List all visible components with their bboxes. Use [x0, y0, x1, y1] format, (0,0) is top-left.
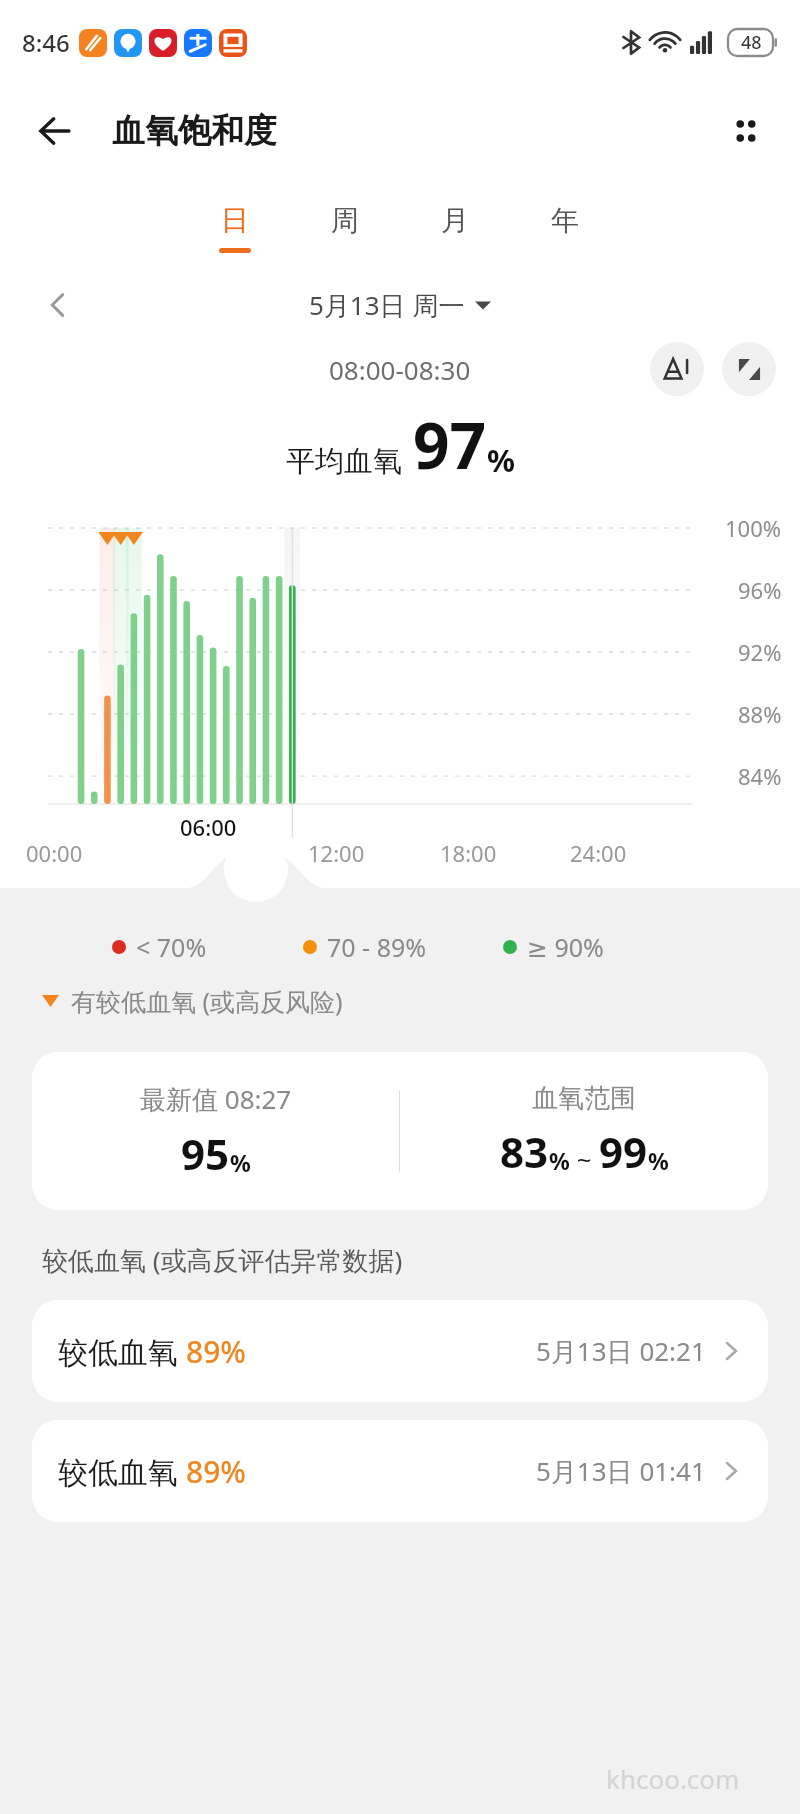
staticText: 5月13日 02:21: [536, 1333, 706, 1369]
button[interactable]: 5月13日 周一: [309, 287, 491, 323]
staticText: %: [648, 1145, 669, 1176]
staticText: 24:00: [570, 838, 627, 868]
staticText: 血氧饱和度: [112, 110, 277, 152]
staticText: 06:00: [180, 812, 237, 842]
staticText: 100%: [725, 513, 782, 543]
staticText: 5月13日 周一: [309, 287, 465, 323]
staticText: 92%: [738, 637, 782, 667]
staticText: 最新值 08:27: [140, 1081, 292, 1117]
staticText: 84%: [738, 761, 782, 791]
button[interactable]: 年: [537, 201, 593, 255]
staticText: 有较低血氧 (或高反风险): [71, 984, 343, 1018]
staticText: 00:00: [26, 838, 83, 868]
staticText: ≥ 90%: [527, 930, 604, 964]
staticText: 较低血氧 (或高反评估异常数据): [42, 1242, 403, 1278]
button[interactable]: 前一天: [34, 281, 82, 329]
button[interactable]: 测量血氧: [650, 342, 704, 396]
staticText: 89%: [186, 1331, 246, 1372]
staticText: 88%: [738, 699, 782, 729]
staticText: < 70%: [136, 930, 207, 964]
button[interactable]: 更多选项: [718, 103, 774, 159]
staticText: 83: [500, 1123, 549, 1180]
button[interactable]: 最新值 08:27: [32, 1052, 768, 1210]
button[interactable]: 月: [427, 201, 483, 255]
staticText: 年: [551, 203, 579, 238]
staticText: 较低血氧: [58, 1451, 186, 1492]
staticText: 70 - 89%: [327, 930, 427, 964]
staticText: 血氧范围: [532, 1082, 636, 1115]
staticText: 97: [413, 401, 487, 488]
staticText: 08:00-08:30: [329, 352, 471, 387]
staticText: %: [487, 439, 515, 481]
button[interactable]: 较低血氧: [32, 1300, 768, 1402]
button[interactable]: 返回: [28, 103, 84, 159]
staticText: khcoo.com: [606, 1761, 740, 1796]
staticText: 8:46: [22, 26, 70, 59]
button[interactable]: 较低血氧: [32, 1420, 768, 1522]
button[interactable]: 周: [317, 201, 373, 255]
staticText: 5月13日 01:41: [536, 1453, 706, 1489]
staticText: 较低血氧: [58, 1331, 186, 1372]
staticText: 18:00: [440, 838, 497, 868]
staticText: 96%: [738, 575, 782, 605]
staticText: 周: [331, 203, 359, 238]
staticText: 89%: [186, 1451, 246, 1492]
staticText: 99: [599, 1123, 648, 1180]
button[interactable]: 日: [207, 201, 263, 255]
button[interactable]: 对比: [722, 342, 776, 396]
staticText: 日: [221, 203, 249, 238]
staticText: 12:00: [308, 838, 365, 868]
staticText: 95: [181, 1125, 230, 1182]
staticText: 月: [441, 203, 469, 238]
staticText: %: [549, 1145, 570, 1176]
staticText: 48: [741, 30, 762, 55]
staticText: ~: [570, 1141, 599, 1176]
staticText: 平均血氧: [286, 443, 402, 480]
staticText: %: [230, 1147, 251, 1178]
